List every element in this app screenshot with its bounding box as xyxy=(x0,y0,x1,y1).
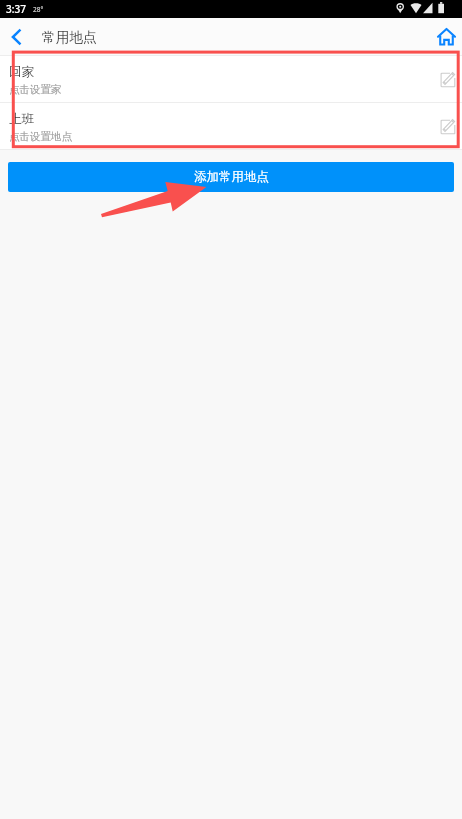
button[interactable]: Home xyxy=(431,18,461,55)
button[interactable]: 回家 xyxy=(0,56,462,102)
button[interactable]: 上班 xyxy=(0,103,462,149)
staticText: 3:37 xyxy=(6,2,26,16)
staticText: 点击设置家 xyxy=(9,83,62,96)
button[interactable]: Back xyxy=(0,18,32,55)
staticText: 上班 xyxy=(9,111,35,127)
staticText: 回家 xyxy=(9,64,35,80)
staticText: 28° xyxy=(33,5,44,14)
staticText: 常用地点 xyxy=(42,29,97,46)
staticText: 点击设置地点 xyxy=(9,130,72,143)
button[interactable]: 添加常用地点 xyxy=(8,162,454,192)
staticText: 添加常用地点 xyxy=(194,169,269,185)
button[interactable]: Edit xyxy=(437,67,459,91)
button[interactable]: Edit xyxy=(437,114,459,138)
